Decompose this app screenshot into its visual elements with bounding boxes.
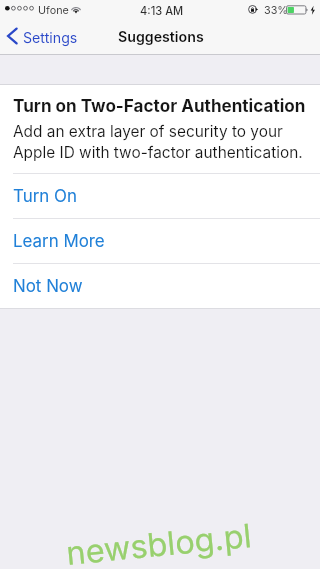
button[interactable]: Back to Settings	[0, 20, 86, 55]
staticText: Settings	[23, 29, 78, 46]
button[interactable]: Not Now	[0, 264, 320, 308]
staticText: Suggestions	[118, 28, 204, 45]
button[interactable]: Learn More	[0, 219, 320, 263]
staticText: 4:13 AM	[140, 4, 184, 17]
staticText: Turn On	[13, 186, 77, 206]
staticText: Ufone	[38, 4, 69, 17]
staticText: Add an extra layer of security to your A…	[13, 122, 307, 161]
button[interactable]: Turn On	[0, 174, 320, 218]
staticText: Not Now	[13, 276, 83, 296]
staticText: newsblog.pl	[64, 516, 253, 569]
staticText: 33%	[264, 4, 288, 17]
staticText: Turn on Two-Factor Authentication	[13, 95, 306, 116]
staticText: Learn More	[13, 231, 105, 251]
